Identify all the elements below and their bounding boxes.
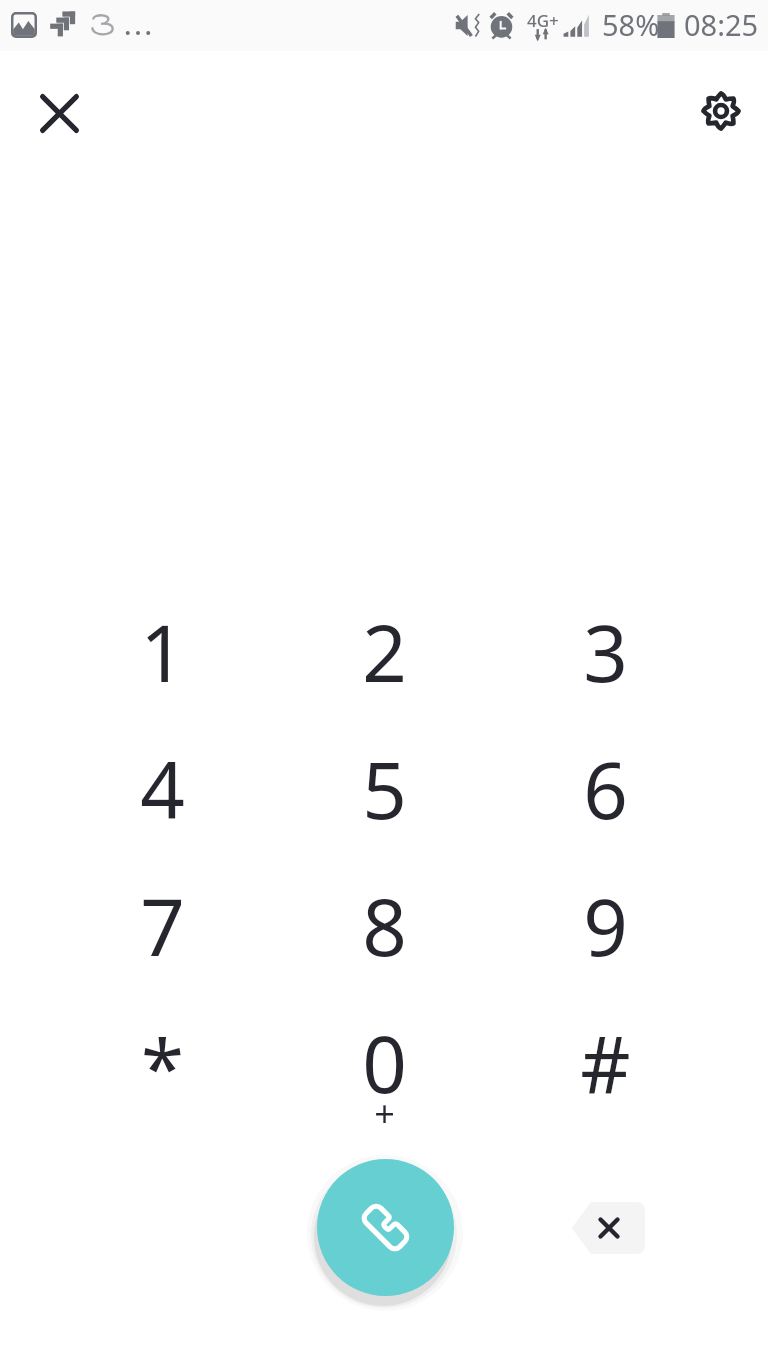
button[interactable]: 9: [494, 860, 716, 997]
staticText: #: [580, 1010, 631, 1116]
button[interactable]: *: [51, 997, 273, 1134]
staticText: +: [374, 1089, 395, 1138]
staticText: *: [141, 1014, 184, 1120]
button[interactable]: Close: [21, 75, 97, 151]
button[interactable]: 5: [273, 723, 495, 860]
staticText: 6: [583, 736, 628, 842]
staticText: 2: [362, 599, 407, 705]
staticText: 7: [140, 873, 185, 979]
button[interactable]: Call: [317, 1159, 454, 1296]
button[interactable]: 0: [273, 997, 495, 1134]
staticText: 4: [140, 736, 185, 842]
staticText: 4G+: [527, 9, 559, 32]
button[interactable]: 7: [51, 860, 273, 997]
staticText: 3: [583, 599, 628, 705]
staticText: 9: [583, 873, 628, 979]
staticText: 0: [362, 1010, 407, 1116]
staticText: 5: [362, 736, 407, 842]
button[interactable]: Backspace: [570, 1202, 645, 1254]
staticText: 8: [362, 873, 407, 979]
button[interactable]: 1: [51, 586, 273, 723]
button[interactable]: 4: [51, 723, 273, 860]
staticText: 58%: [602, 5, 660, 44]
button[interactable]: 8: [273, 860, 495, 997]
staticText: 1: [140, 599, 185, 705]
button[interactable]: 2: [273, 586, 495, 723]
button[interactable]: 6: [494, 723, 716, 860]
button[interactable]: Settings: [685, 75, 757, 147]
button[interactable]: 3: [494, 586, 716, 723]
staticText: 08:25: [684, 5, 759, 44]
button[interactable]: #: [494, 997, 716, 1134]
